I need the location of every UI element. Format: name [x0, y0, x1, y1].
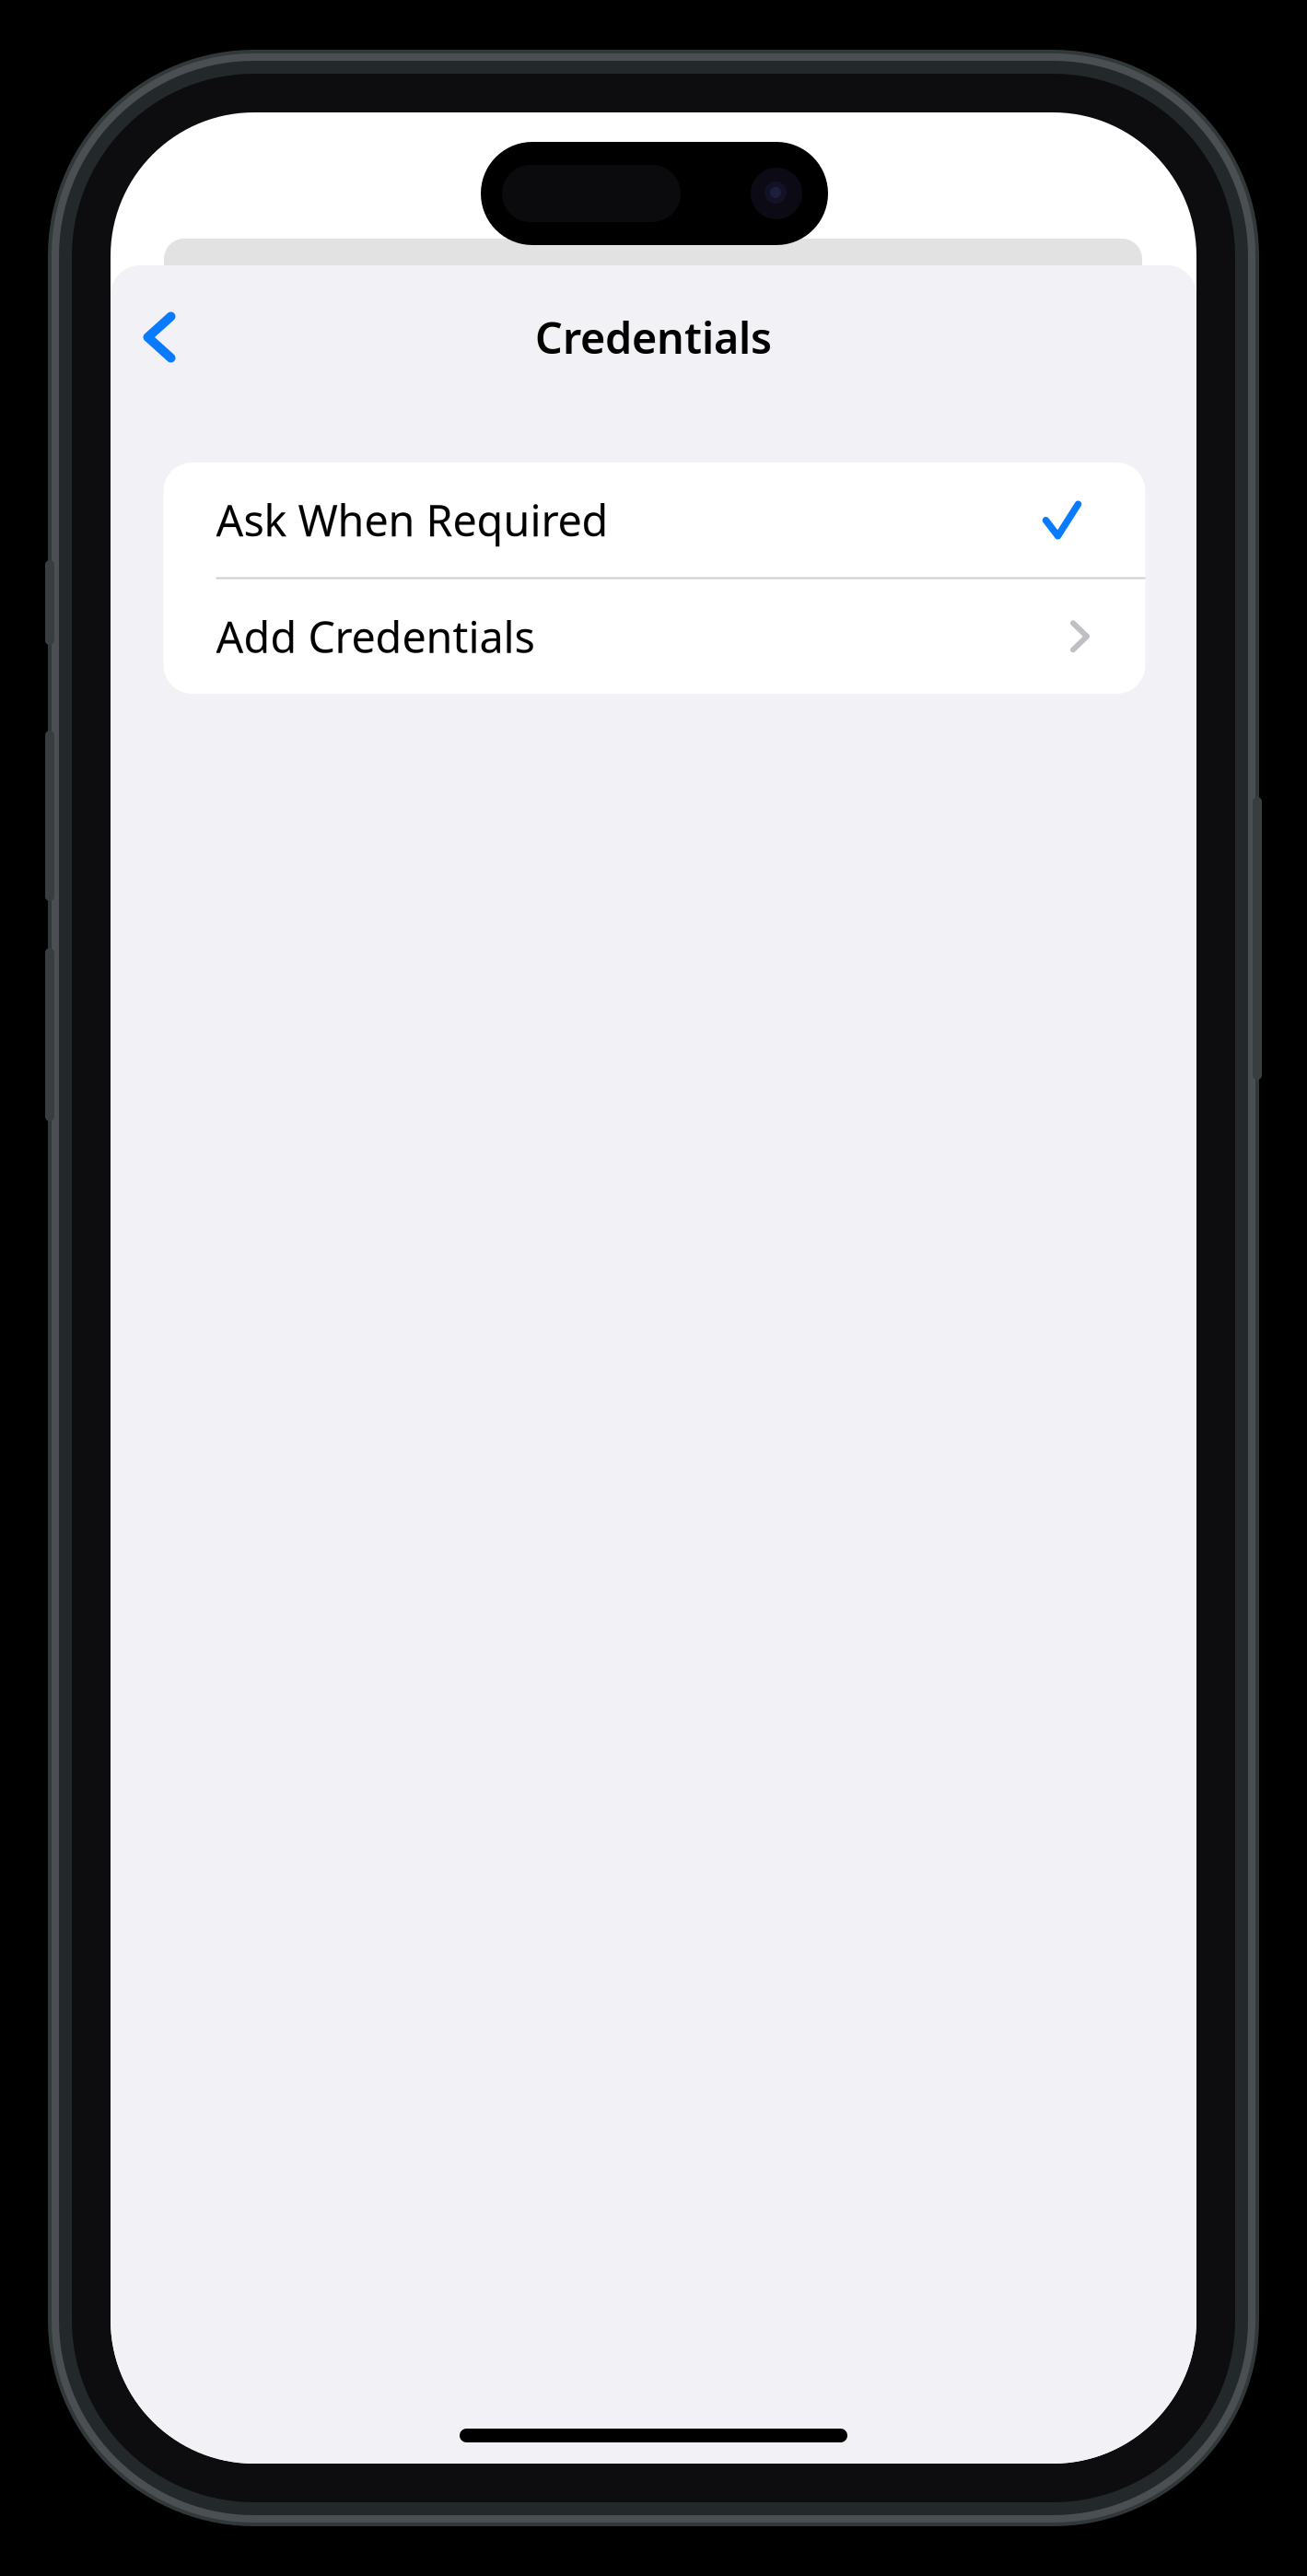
button[interactable]: Ask When Required [163, 463, 1145, 577]
staticText: Credentials [535, 309, 772, 366]
button[interactable]: Back [111, 276, 208, 398]
staticText: Ask When Required [216, 491, 608, 548]
staticText: Add Credentials [216, 608, 535, 665]
button[interactable]: Add Credentials [163, 579, 1145, 694]
